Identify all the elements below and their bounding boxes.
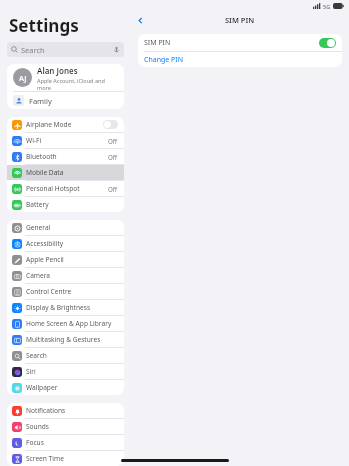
button[interactable]: Wi-Fi: [7, 133, 124, 148]
button[interactable]: Search: [7, 348, 124, 363]
button[interactable]: AJ: [7, 64, 124, 91]
button[interactable]: Display & Brightness: [7, 300, 124, 315]
button[interactable]: Mobile Data: [7, 165, 124, 180]
button[interactable]: Wallpaper: [7, 380, 124, 395]
staticText: SIM PIN: [144, 38, 319, 48]
staticText: Change PIN: [144, 55, 184, 65]
staticText: Apple Pencil: [26, 255, 118, 264]
staticText: Display & Brightness: [26, 303, 118, 312]
staticText: Battery: [26, 200, 118, 209]
staticText: Sounds: [26, 422, 118, 431]
button[interactable]: Battery: [7, 197, 124, 212]
button[interactable]: Airplane Mode toggle: [103, 120, 118, 129]
staticText: Siri: [26, 367, 118, 376]
staticText: Control Centre: [26, 287, 118, 296]
button[interactable]: Siri: [7, 364, 124, 379]
staticText: Off: [108, 185, 118, 193]
staticText: Home Screen & App Library: [26, 319, 118, 328]
button[interactable]: Back: [134, 14, 147, 27]
staticText: Airplane Mode: [26, 120, 103, 129]
button[interactable]: Change PIN: [138, 52, 342, 67]
staticText: Wallpaper: [26, 383, 118, 392]
button[interactable]: Focus: [7, 435, 124, 450]
staticText: Bluetooth: [26, 152, 108, 161]
staticText: SIM PIN: [225, 15, 255, 25]
staticText: Off: [108, 137, 118, 145]
button[interactable]: Personal Hotspot: [7, 181, 124, 196]
staticText: AJ: [19, 73, 27, 83]
button[interactable]: Family: [7, 92, 124, 109]
button[interactable]: Accessibility: [7, 236, 124, 251]
staticText: Screen Time: [26, 454, 118, 463]
staticText: 5G: [323, 3, 331, 10]
staticText: Alan Jones: [37, 65, 78, 76]
button[interactable]: General: [7, 220, 124, 235]
staticText: Notifications: [26, 406, 118, 415]
staticText: Search: [21, 45, 113, 55]
button[interactable]: Camera: [7, 268, 124, 283]
button[interactable]: Sounds: [7, 419, 124, 434]
button[interactable]: SIM PIN toggle: [319, 38, 336, 48]
button[interactable]: Notifications: [7, 403, 124, 418]
staticText: Apple Account, iCloud and more: [37, 77, 118, 91]
staticText: Mobile Data: [26, 168, 118, 177]
staticText: Accessibility: [26, 239, 118, 248]
button[interactable]: Screen Time: [7, 451, 124, 466]
button[interactable]: Home Screen & App Library: [7, 316, 124, 331]
staticText: Wi-Fi: [26, 136, 108, 145]
staticText: Off: [108, 153, 118, 161]
button[interactable]: Search: [7, 42, 124, 57]
staticText: Camera: [26, 271, 118, 280]
button[interactable]: Apple Pencil: [7, 252, 124, 267]
staticText: Multitasking & Gestures: [26, 335, 118, 344]
staticText: Focus: [26, 438, 118, 447]
staticText: General: [26, 223, 118, 232]
button[interactable]: Control Centre: [7, 284, 124, 299]
button[interactable]: Bluetooth: [7, 149, 124, 164]
staticText: Search: [26, 351, 118, 360]
staticText: Family: [29, 96, 52, 106]
button[interactable]: Airplane Mode: [7, 117, 124, 132]
staticText: Personal Hotspot: [26, 184, 108, 193]
staticText: Settings: [9, 14, 79, 37]
button[interactable]: Multitasking & Gestures: [7, 332, 124, 347]
button[interactable]: SIM PIN: [138, 34, 342, 51]
